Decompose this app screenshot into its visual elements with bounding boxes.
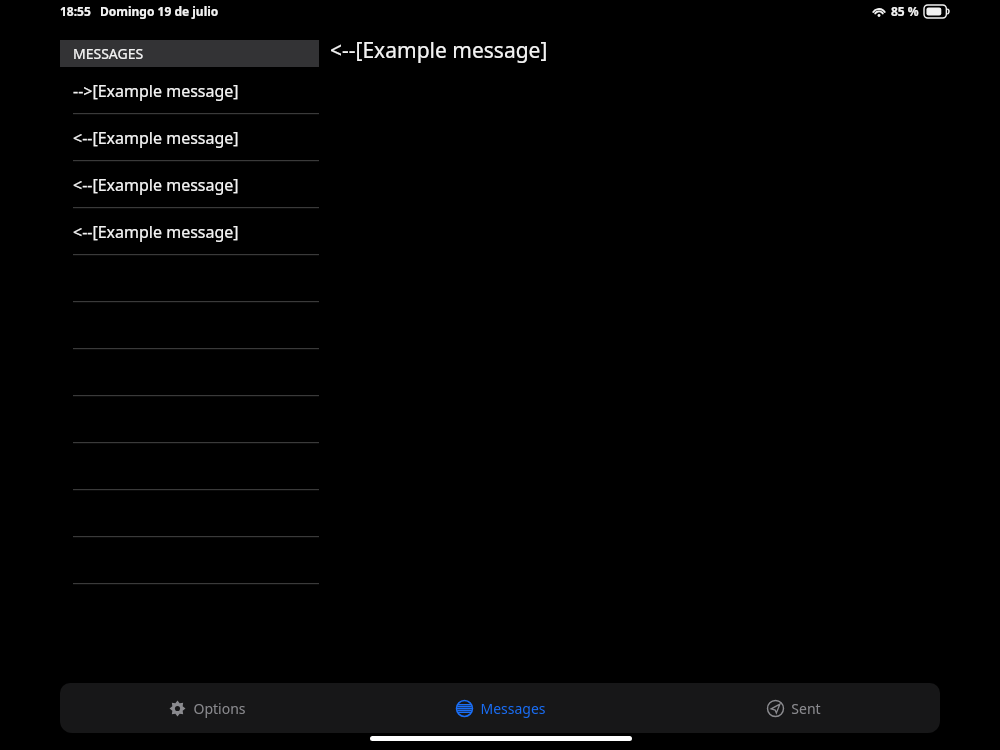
button[interactable]: Sent [647, 683, 940, 733]
staticText: Options [193, 699, 246, 718]
staticText: Messages [480, 699, 546, 718]
staticText: -->[Example message] [73, 80, 239, 102]
staticText: MESSAGES [73, 44, 144, 63]
staticText: Sent [791, 699, 821, 718]
staticText: Domingo 19 de julio [100, 3, 219, 19]
staticText: <--[Example message] [330, 36, 548, 65]
staticText: <--[Example message] [73, 221, 239, 243]
button[interactable]: Messages [354, 683, 647, 733]
button[interactable]: <--[Example message] [60, 208, 320, 255]
staticText: 85 % [891, 3, 919, 19]
button[interactable]: MESSAGES [60, 40, 319, 67]
button[interactable]: -->[Example message] [60, 67, 320, 114]
button[interactable]: <--[Example message] [60, 114, 320, 161]
button[interactable]: <--[Example message] [60, 161, 320, 208]
staticText: <--[Example message] [73, 174, 239, 196]
staticText: <--[Example message] [73, 127, 239, 149]
button[interactable]: Options [60, 683, 354, 733]
button[interactable]: <--[Example message] [330, 36, 548, 65]
staticText: 18:55 [60, 3, 91, 19]
